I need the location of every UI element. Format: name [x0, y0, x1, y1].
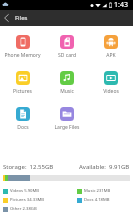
staticText: APK [106, 52, 116, 59]
button[interactable]: Music [45, 66, 89, 102]
staticText: Storage: 12.55GB [3, 163, 54, 171]
staticText: Large Files [54, 124, 80, 131]
button[interactable]: Videos [89, 66, 133, 102]
button[interactable]: SD card [45, 30, 89, 66]
staticText: Music [60, 88, 74, 95]
button[interactable]: Docs [0, 102, 45, 138]
staticText: SD card [58, 52, 76, 59]
staticText: Pictures [13, 88, 32, 95]
button[interactable]: APK [89, 30, 133, 66]
staticText: Files [15, 14, 28, 22]
button[interactable]: Large Files [45, 102, 89, 138]
staticText: Docs [17, 124, 29, 131]
button[interactable]: Back [0, 10, 13, 26]
staticText: Videos [103, 88, 119, 95]
staticText: Available: 9.91GB [79, 163, 130, 171]
button[interactable]: Phone Memory [0, 30, 45, 66]
staticText: Pictures 34.33MB [10, 197, 45, 203]
staticText: Other 2.38GB [10, 206, 37, 212]
staticText: Phone Memory [4, 52, 41, 59]
staticText: 1:43 [114, 0, 128, 10]
button[interactable]: Pictures [0, 66, 45, 102]
staticText: Music 231MB [84, 188, 111, 194]
staticText: Videos 5.90MB [10, 188, 39, 194]
staticText: Docs 4.18MB [84, 197, 110, 203]
